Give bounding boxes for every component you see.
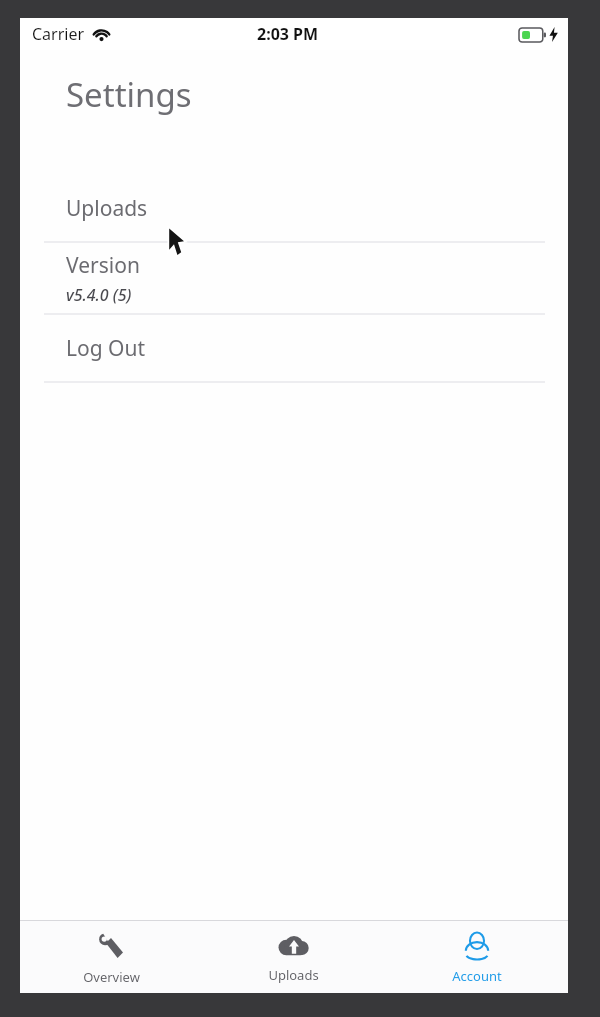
button[interactable]: Log Out — [20, 315, 568, 383]
button[interactable]: Version — [20, 243, 568, 315]
staticText: Overview — [83, 968, 140, 986]
button[interactable]: Uploads — [202, 921, 385, 993]
staticText: Log Out — [66, 334, 146, 363]
staticText: Account — [452, 967, 502, 985]
button[interactable]: Overview — [20, 921, 202, 993]
staticText: Settings — [66, 72, 192, 117]
button[interactable]: Account — [385, 921, 568, 993]
staticText: Carrier — [32, 23, 85, 45]
staticText: Version — [66, 251, 140, 280]
staticText: Uploads — [268, 966, 319, 984]
button[interactable]: Uploads — [20, 175, 568, 243]
staticText: 2:03 PM — [257, 23, 319, 45]
staticText: Uploads — [66, 194, 148, 223]
staticText: v5.4.0 (5) — [66, 284, 132, 306]
